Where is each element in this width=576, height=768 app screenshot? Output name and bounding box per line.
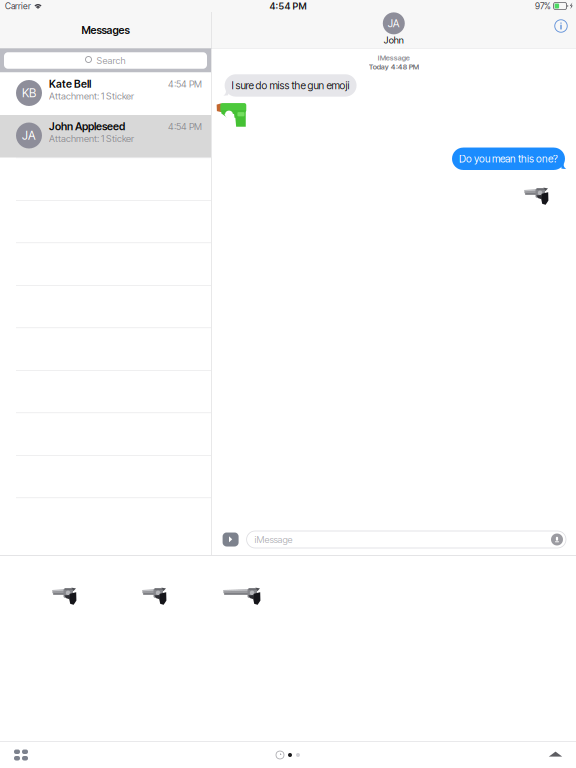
button[interactable]: App drawer bbox=[12, 748, 30, 762]
staticText: Attachment: 1 Sticker bbox=[49, 90, 134, 102]
staticText: John Appleseed bbox=[49, 120, 125, 133]
staticText: 4:54 PM bbox=[269, 0, 306, 12]
staticText: I sure do miss the gun emoji bbox=[232, 79, 350, 92]
staticText: 4:54 PM bbox=[168, 79, 202, 90]
button[interactable]: iMessage apps bbox=[223, 532, 239, 546]
button[interactable]: Dictate bbox=[551, 533, 563, 545]
staticText: KB bbox=[22, 86, 36, 100]
staticText: Attachment: 1 Sticker bbox=[49, 133, 134, 144]
button[interactable]: KB bbox=[0, 72, 211, 115]
staticText: Do you mean this one? bbox=[459, 153, 558, 165]
staticText: John bbox=[384, 34, 404, 46]
staticText: Kate Bell bbox=[49, 77, 91, 90]
staticText: Today 4:48 PM bbox=[369, 62, 419, 71]
button[interactable]: Expand app bbox=[548, 750, 564, 760]
button[interactable]: Long revolver sticker bbox=[223, 585, 265, 608]
button[interactable]: Details bbox=[551, 16, 571, 36]
staticText: Carrier bbox=[5, 1, 31, 11]
button[interactable]: Search bbox=[4, 52, 207, 69]
button[interactable]: Revolver sticker bbox=[52, 585, 81, 608]
staticText: iMessage bbox=[378, 53, 410, 62]
staticText: Messages bbox=[81, 23, 129, 36]
staticText: 4:54 PM bbox=[168, 121, 202, 132]
staticText: Search bbox=[96, 55, 125, 66]
staticText: JA bbox=[22, 128, 36, 143]
button[interactable]: Revolver sticker bbox=[142, 585, 171, 608]
staticText: 97% bbox=[535, 1, 551, 11]
staticText: iMessage bbox=[255, 534, 293, 545]
button[interactable]: JA bbox=[0, 115, 211, 157]
staticText: JA bbox=[388, 17, 400, 30]
